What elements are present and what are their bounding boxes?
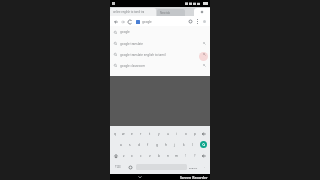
staticText: ?123 [115,165,121,169]
staticText: g [156,143,158,147]
button[interactable]: g [152,139,161,150]
button[interactable]: google translate english to tamil [110,49,210,60]
button[interactable]: Bookmark [187,18,194,25]
staticText: c [140,154,142,158]
staticText: English [189,166,198,169]
button[interactable]: x [128,150,136,161]
staticText: f [147,143,149,147]
button[interactable]: ! [181,150,190,161]
staticText: w [122,132,125,136]
button[interactable]: a [116,139,125,150]
button[interactable]: More options [194,18,201,25]
button[interactable]: New tab [157,9,185,16]
button[interactable]: s [125,139,134,150]
button[interactable]: h [161,139,170,150]
staticText: google [142,20,152,24]
staticText: ! [185,154,186,158]
button[interactable]: m [172,150,181,161]
button[interactable]: Profile [201,18,208,25]
staticText: ? [194,154,196,158]
button[interactable]: d [134,139,143,150]
button[interactable]: q [111,128,119,139]
button[interactable]: google [110,26,210,38]
staticText: online english to tamil tra [113,10,145,14]
staticText: . [204,165,205,169]
button[interactable]: k [179,139,188,150]
staticText: k [183,143,185,147]
button[interactable]: b [154,150,163,161]
button[interactable]: Backspace [199,128,209,139]
button[interactable]: Forward [119,18,126,25]
button[interactable]: j [170,139,179,150]
button[interactable]: e [127,128,136,139]
button[interactable]: u [163,128,172,139]
staticText: h [165,143,167,147]
button[interactable]: Shift [111,150,120,161]
button[interactable]: ?123 [111,162,125,172]
staticText: q [114,132,116,136]
button[interactable]: w [119,128,127,139]
staticText: n [167,154,169,158]
button[interactable]: Emoji [125,162,135,172]
button[interactable]: v [145,150,154,161]
button[interactable]: p [190,128,199,139]
staticText: z [123,154,125,158]
staticText: y [158,132,160,136]
button[interactable]: Delete [199,150,209,161]
button[interactable]: l [188,139,197,150]
button[interactable]: y [154,128,163,139]
button[interactable]: o [181,128,190,139]
button[interactable]: google translate [110,38,210,49]
staticText: p [194,132,196,136]
button[interactable]: t [145,128,154,139]
staticText: v [149,154,151,158]
button[interactable]: ? [190,150,199,161]
staticText: r [140,132,142,136]
staticText: New tab [160,11,171,15]
button[interactable]: Reload [126,18,133,25]
button[interactable]: f [143,139,152,150]
button[interactable]: Search [200,141,207,148]
staticText: e [131,132,133,136]
staticText: o [185,132,187,136]
staticText: b [158,154,160,158]
button[interactable]: Back [112,18,119,25]
staticText: u [167,132,169,136]
button[interactable]: google classroom [110,60,210,71]
button[interactable]: c [136,150,145,161]
staticText: google translate [120,42,144,46]
staticText: Screen Recorder [180,175,208,180]
button[interactable]: n [163,150,172,161]
button[interactable]: Hide keyboard [136,174,144,180]
staticText: google [120,30,130,34]
staticText: d [138,143,140,147]
staticText: t [149,132,151,136]
button[interactable]: r [136,128,145,139]
button[interactable]: i [172,128,181,139]
button[interactable]: English [188,162,199,172]
staticText: a [120,143,122,147]
button[interactable]: google [134,18,186,25]
staticText: s [129,143,131,147]
button[interactable]: online english to tamil tra [110,8,156,16]
button[interactable]: z [120,150,128,161]
staticText: google classroom [120,64,145,68]
staticText: l [192,143,193,147]
staticText: j [174,143,175,147]
staticText: x [131,154,133,158]
button[interactable]: New tab [194,8,210,16]
staticText: m [175,154,178,158]
staticText: i [176,132,177,136]
staticText: google translate english to tamil [120,53,166,57]
